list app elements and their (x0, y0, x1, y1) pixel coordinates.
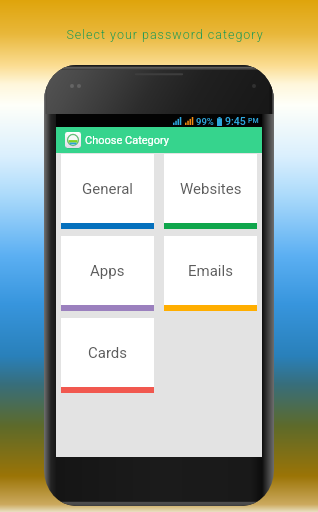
staticText: 99% (196, 116, 214, 127)
button[interactable]: Websites (164, 154, 257, 229)
staticText: Emails (188, 262, 233, 280)
staticText: Websites (180, 180, 242, 198)
button[interactable]: Cards (61, 318, 154, 393)
staticText: Choose Category (85, 134, 170, 147)
staticText: Apps (90, 262, 125, 280)
button[interactable]: General (61, 154, 154, 229)
staticText: PM (248, 117, 259, 125)
staticText: Cards (88, 344, 128, 362)
staticText: General (82, 180, 134, 198)
button[interactable]: Emails (164, 236, 257, 311)
button[interactable]: Apps (61, 236, 154, 311)
button[interactable]: Choose Category (56, 127, 262, 153)
staticText: Select your password category (12, 27, 318, 42)
staticText: 9:45 (225, 115, 246, 127)
